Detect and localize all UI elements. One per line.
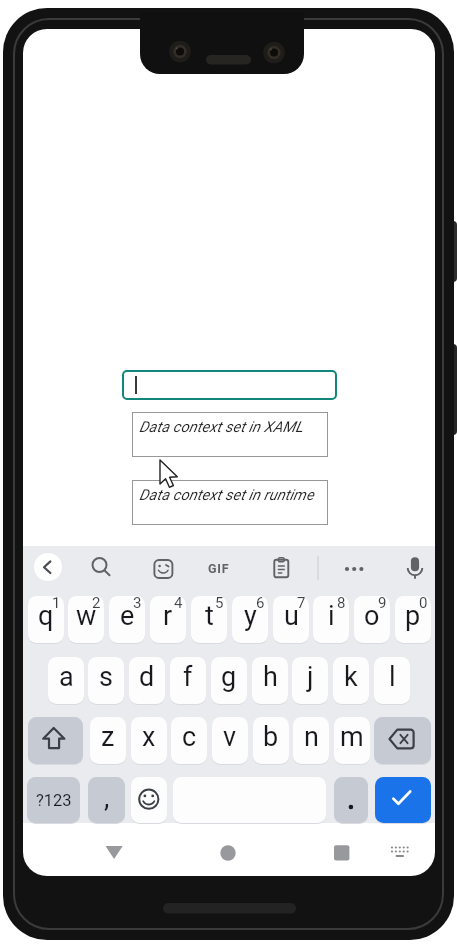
- button[interactable]: s: [88, 657, 124, 704]
- staticText: f: [183, 661, 193, 693]
- button[interactable]: [213, 839, 243, 867]
- staticText: g: [221, 661, 237, 693]
- button[interactable]: [334, 777, 368, 823]
- staticText: 0: [419, 596, 428, 612]
- button[interactable]: v: [212, 717, 248, 764]
- staticText: d: [139, 661, 155, 693]
- staticText: t: [205, 600, 214, 632]
- button[interactable]: o: [354, 596, 390, 643]
- button[interactable]: Data context set in XAML: [132, 412, 328, 457]
- staticText: r: [163, 600, 173, 632]
- button[interactable]: g: [211, 657, 247, 704]
- staticText: h: [263, 661, 278, 693]
- staticText: z: [101, 721, 115, 753]
- staticText: b: [263, 721, 279, 753]
- button[interactable]: i: [313, 596, 349, 643]
- button[interactable]: [385, 839, 413, 867]
- staticText: w: [76, 600, 97, 632]
- staticText: k: [344, 661, 358, 693]
- staticText: 6: [256, 596, 265, 612]
- button[interactable]: [34, 553, 62, 581]
- button[interactable]: k: [333, 657, 369, 704]
- staticText: n: [304, 721, 319, 753]
- button[interactable]: x: [131, 717, 167, 764]
- button[interactable]: [375, 777, 431, 823]
- staticText: 9: [378, 596, 387, 612]
- staticText: e: [120, 600, 135, 632]
- button[interactable]: p: [395, 596, 431, 643]
- button[interactable]: t: [191, 596, 227, 643]
- button[interactable]: j: [292, 657, 328, 704]
- staticText: ?123: [36, 791, 72, 810]
- staticText: v: [223, 721, 237, 753]
- staticText: a: [59, 661, 74, 693]
- staticText: c: [182, 721, 197, 753]
- staticText: 1: [52, 596, 61, 612]
- button[interactable]: u: [273, 596, 309, 643]
- button[interactable]: [98, 839, 132, 867]
- button[interactable]: q: [28, 596, 64, 643]
- staticText: 3: [133, 596, 142, 612]
- button[interactable]: d: [129, 657, 165, 704]
- staticText: p: [405, 600, 421, 632]
- staticText: i: [328, 600, 335, 632]
- staticText: l: [389, 661, 396, 693]
- button[interactable]: n: [293, 717, 329, 764]
- button[interactable]: h: [252, 657, 288, 704]
- button[interactable]: [326, 839, 356, 867]
- staticText: s: [99, 661, 113, 693]
- staticText: 7: [297, 596, 306, 612]
- button[interactable]: a: [48, 657, 84, 704]
- staticText: ,: [104, 782, 110, 814]
- staticText: 2: [92, 596, 101, 612]
- staticText: 8: [337, 596, 346, 612]
- staticText: 5: [215, 596, 224, 612]
- staticText: q: [38, 600, 54, 632]
- staticText: o: [364, 600, 380, 632]
- button[interactable]: [131, 777, 167, 823]
- button[interactable]: w: [68, 596, 104, 643]
- button[interactable]: f: [170, 657, 206, 704]
- button[interactable]: e: [109, 596, 145, 643]
- staticText: y: [244, 600, 257, 632]
- staticText: Data context set in runtime: [139, 486, 314, 504]
- staticText: GIF: [208, 561, 230, 576]
- button[interactable]: y: [232, 596, 268, 643]
- staticText: Data context set in XAML: [139, 418, 303, 436]
- button[interactable]: z: [90, 717, 126, 764]
- staticText: j: [307, 661, 314, 693]
- button[interactable]: b: [253, 717, 289, 764]
- button[interactable]: [122, 370, 337, 400]
- staticText: x: [142, 721, 156, 753]
- button[interactable]: ,: [88, 777, 125, 823]
- staticText: m: [340, 721, 364, 753]
- button[interactable]: [374, 717, 431, 764]
- button[interactable]: c: [171, 717, 207, 764]
- button[interactable]: m: [334, 717, 370, 764]
- staticText: u: [284, 600, 299, 632]
- button[interactable]: r: [150, 596, 186, 643]
- button[interactable]: [28, 717, 83, 764]
- staticText: 4: [174, 596, 183, 612]
- button[interactable]: Data context set in runtime: [132, 480, 328, 525]
- button[interactable]: l: [374, 657, 410, 704]
- button[interactable]: ?123: [27, 777, 80, 823]
